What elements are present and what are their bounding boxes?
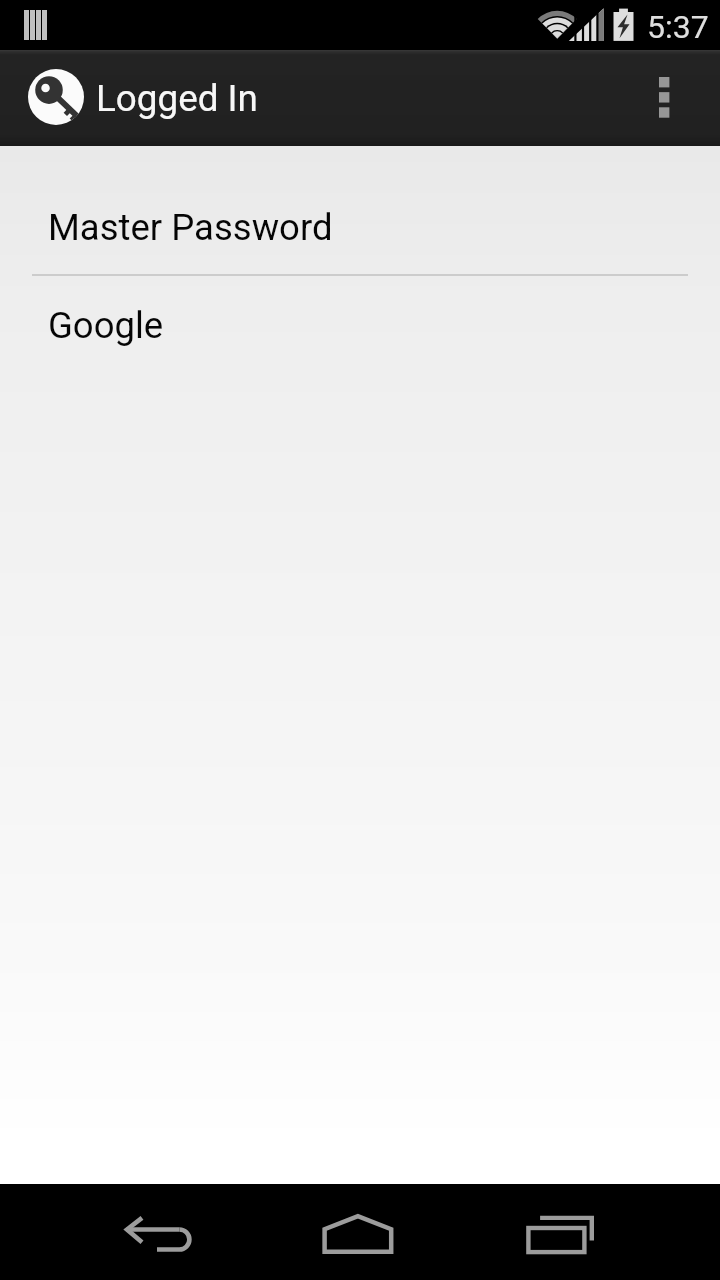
- button[interactable]: Master Password: [0, 178, 720, 274]
- staticText: Google: [48, 304, 164, 347]
- button[interactable]: Home: [240, 1184, 480, 1280]
- button[interactable]: Back: [38, 1184, 278, 1280]
- button[interactable]: Recent apps: [442, 1184, 682, 1280]
- button[interactable]: More options: [624, 50, 720, 146]
- staticText: Logged In: [96, 77, 258, 120]
- staticText: 5:37: [647, 8, 709, 46]
- staticText: Master Password: [48, 206, 333, 249]
- button[interactable]: Google: [0, 276, 720, 372]
